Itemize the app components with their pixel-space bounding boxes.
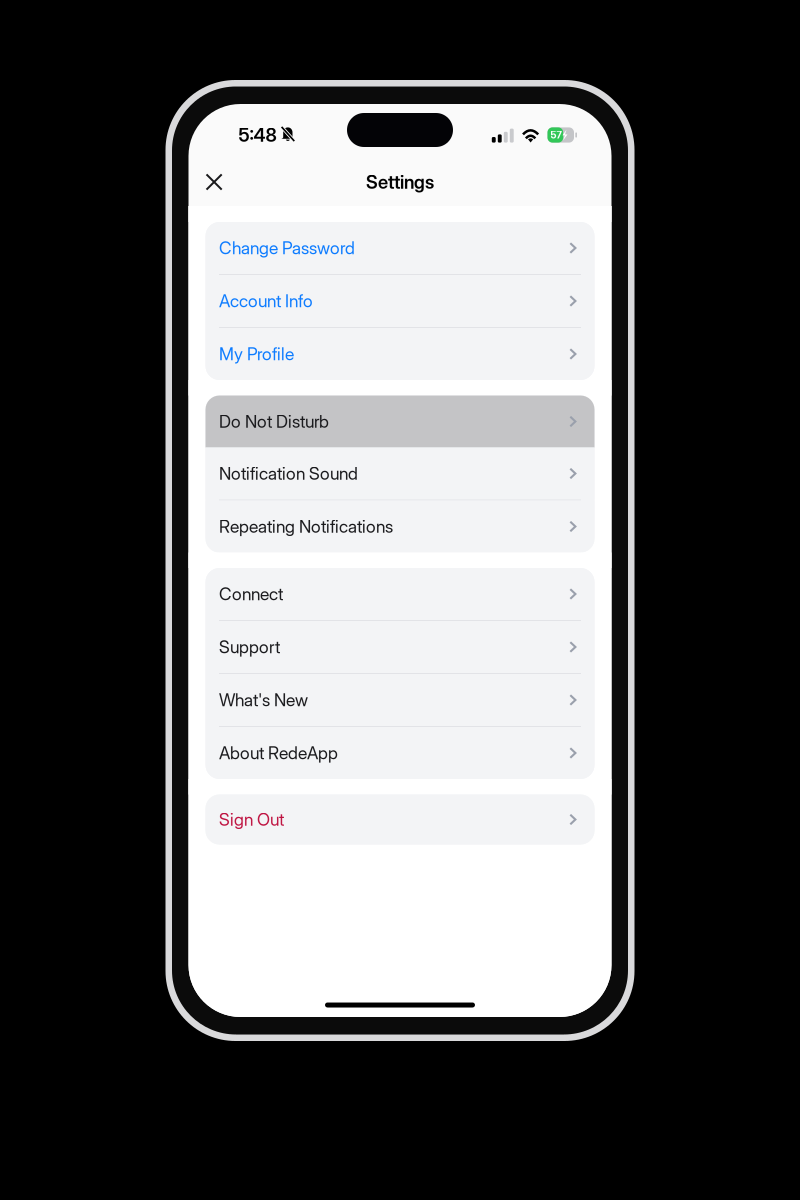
- button[interactable]: Change Password: [205, 222, 594, 274]
- staticText: 5:48: [238, 124, 276, 146]
- staticText: Notification Sound: [219, 463, 358, 484]
- staticText: Do Not Disturb: [219, 411, 329, 432]
- button[interactable]: My Profile: [205, 328, 594, 380]
- staticText: Support: [219, 636, 280, 657]
- staticText: 57: [550, 129, 561, 141]
- staticText: Repeating Notifications: [219, 516, 393, 537]
- button[interactable]: Repeating Notifications: [205, 500, 594, 552]
- staticText: My Profile: [219, 343, 294, 364]
- staticText: Settings: [366, 171, 434, 193]
- button[interactable]: What's New: [205, 674, 594, 726]
- staticText: Account Info: [219, 290, 313, 311]
- button[interactable]: Account Info: [205, 275, 594, 327]
- staticText: Sign Out: [219, 809, 284, 830]
- button[interactable]: Sign Out: [205, 794, 594, 844]
- button[interactable]: About RedeApp: [205, 727, 594, 779]
- staticText: About RedeApp: [219, 742, 338, 763]
- staticText: What's New: [219, 689, 308, 710]
- button[interactable]: Do Not Disturb: [205, 395, 594, 447]
- staticText: Change Password: [219, 237, 355, 258]
- staticText: Connect: [219, 583, 283, 604]
- button[interactable]: Close: [194, 162, 234, 202]
- button[interactable]: Support: [205, 621, 594, 673]
- button[interactable]: Notification Sound: [205, 447, 594, 499]
- button[interactable]: Connect: [205, 568, 594, 620]
